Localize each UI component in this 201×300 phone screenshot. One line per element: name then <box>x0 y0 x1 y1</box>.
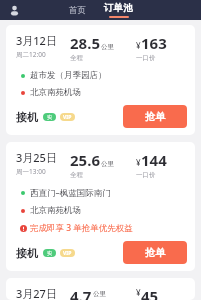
staticText: 一口价 <box>136 54 156 62</box>
staticText: 全程 <box>70 171 83 179</box>
staticText: VIP <box>63 250 72 257</box>
staticText: 周一13:00 <box>16 167 46 176</box>
staticText: 163 <box>141 33 167 53</box>
staticText: 北京南苑机场 <box>30 87 81 98</box>
staticText: VIP <box>63 114 72 121</box>
staticText: 北京南苑机场 <box>30 205 81 216</box>
staticText: 3月27日 <box>16 286 57 300</box>
staticText: 西直门–枫蓝国际南门 <box>30 187 111 199</box>
staticText: 超市发（月季园店） <box>30 70 107 81</box>
staticText: 3月12日 <box>16 33 57 48</box>
staticText: 45 <box>141 286 159 300</box>
staticText: ¥ <box>136 40 141 51</box>
staticText: 全程 <box>70 54 83 62</box>
staticText: 公里 <box>101 160 114 168</box>
button[interactable]: 抢单 <box>123 241 187 264</box>
button[interactable]: Profile <box>5 1 23 19</box>
staticText: 周二12:00 <box>16 50 46 59</box>
staticText: 实 <box>47 250 52 256</box>
button[interactable]: 订单池 <box>98 2 139 18</box>
button[interactable]: 3月25日 <box>6 142 195 271</box>
staticText: 抢单 <box>145 246 165 259</box>
button[interactable]: 抢单 <box>123 105 187 128</box>
staticText: ¥ <box>136 287 141 298</box>
staticText: ¥ <box>136 157 141 168</box>
staticText: 一口价 <box>136 171 156 179</box>
staticText: 订单池 <box>104 2 133 14</box>
button[interactable]: 3月12日 <box>6 25 195 135</box>
staticText: 实 <box>47 114 52 120</box>
staticText: 144 <box>141 150 167 170</box>
staticText: 接机 <box>16 246 38 260</box>
staticText: 接机 <box>16 110 38 124</box>
staticText: 公里 <box>101 43 114 51</box>
staticText: 公里 <box>93 290 106 298</box>
staticText: 4.7 <box>70 286 92 300</box>
staticText: 28.5 <box>70 33 100 53</box>
staticText: 抢单 <box>145 110 165 123</box>
staticText: 3月25日 <box>16 150 57 165</box>
button[interactable]: 首页 <box>63 5 92 16</box>
staticText: 完成即享 3 单抢单优先权益 <box>30 222 133 234</box>
button[interactable]: 3月27日 <box>6 278 195 300</box>
staticText: 首页 <box>69 5 86 16</box>
staticText: 25.6 <box>70 150 100 170</box>
